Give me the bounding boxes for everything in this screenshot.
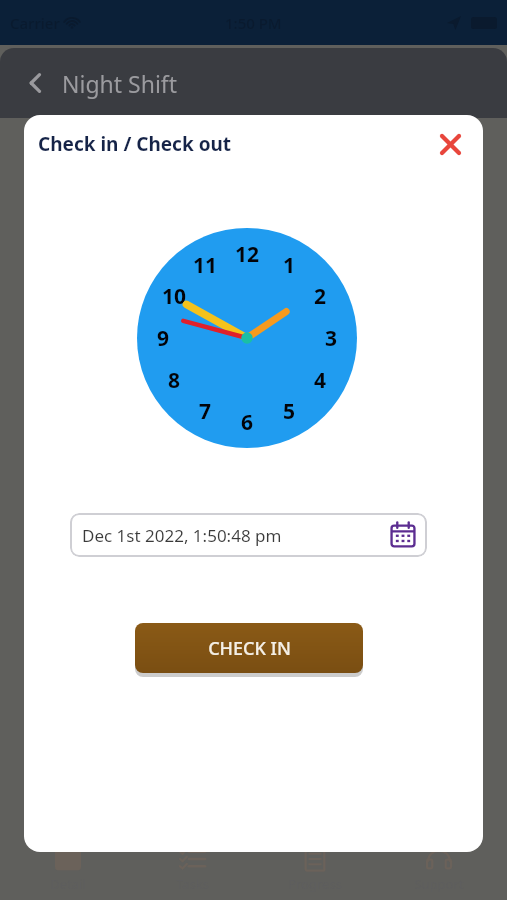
- button[interactable]: Progress: [260, 846, 370, 893]
- staticText: 4: [314, 366, 327, 395]
- staticText: CHECK IN: [208, 636, 291, 661]
- button[interactable]: Close: [433, 127, 467, 161]
- staticText: 11: [193, 251, 218, 280]
- staticText: Dec 1st 2022, 1:50:48 pm: [82, 524, 282, 547]
- button[interactable]: Back: [14, 61, 58, 105]
- button[interactable]: Tasks: [137, 846, 247, 893]
- button[interactable]: Dec 1st 2022, 1:50:48 pm: [70, 513, 427, 557]
- staticText: 1:50 PM: [225, 13, 282, 33]
- staticText: 6: [241, 408, 254, 437]
- button[interactable]: CHECK IN: [135, 623, 363, 673]
- button[interactable]: Detail: [13, 846, 123, 893]
- staticText: Night Shift: [62, 68, 178, 99]
- staticText: 1: [283, 251, 296, 280]
- button[interactable]: Pick date: [390, 522, 416, 548]
- staticText: 2: [314, 282, 327, 311]
- staticText: 12: [235, 240, 260, 269]
- staticText: 3: [325, 324, 338, 353]
- staticText: 10: [162, 282, 187, 311]
- staticText: 8: [168, 366, 181, 395]
- staticText: 7: [199, 397, 212, 426]
- button[interactable]: Support: [384, 846, 494, 893]
- staticText: 5: [283, 397, 296, 426]
- staticText: Check in / Check out: [38, 131, 232, 157]
- staticText: 9: [157, 324, 170, 353]
